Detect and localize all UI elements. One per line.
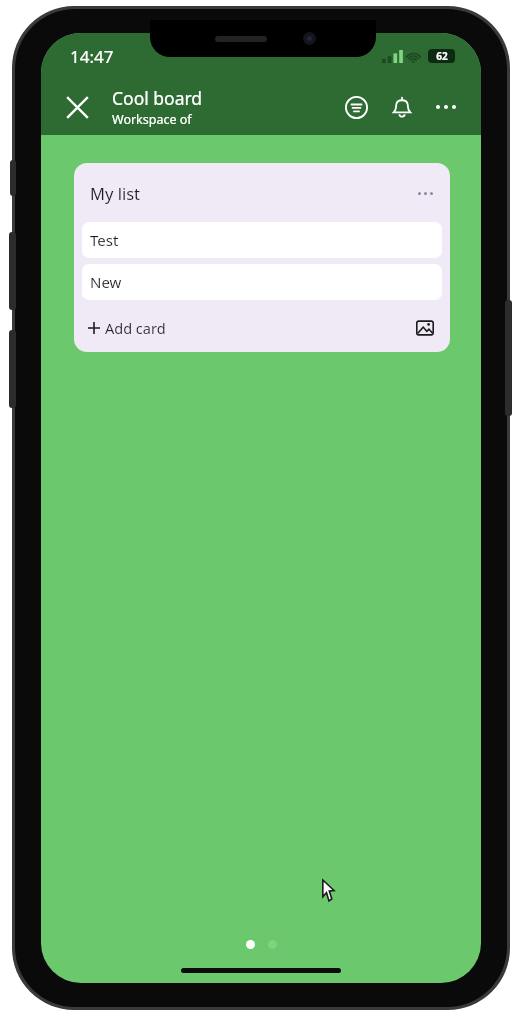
button[interactable]: Cool board [112, 86, 335, 128]
button[interactable]: More options [425, 86, 467, 128]
button[interactable]: Test [82, 222, 442, 258]
staticText: My list [90, 182, 408, 204]
staticText: Test [90, 230, 119, 250]
staticText: Cool board [112, 86, 203, 110]
staticText: New [90, 272, 122, 292]
button[interactable]: My list [82, 163, 442, 222]
button[interactable]: Add image [408, 311, 442, 345]
button[interactable]: Filter [335, 86, 377, 128]
button[interactable]: Add card [82, 306, 408, 350]
button[interactable]: Close [55, 85, 99, 129]
button[interactable]: Notifications [381, 86, 423, 128]
button[interactable]: List actions [408, 176, 442, 210]
staticText: Workspace of [112, 111, 192, 128]
staticText: Add card [105, 318, 166, 338]
button[interactable]: New [82, 264, 442, 300]
staticText: 62 [436, 49, 448, 63]
staticText: 14:47 [70, 45, 114, 68]
